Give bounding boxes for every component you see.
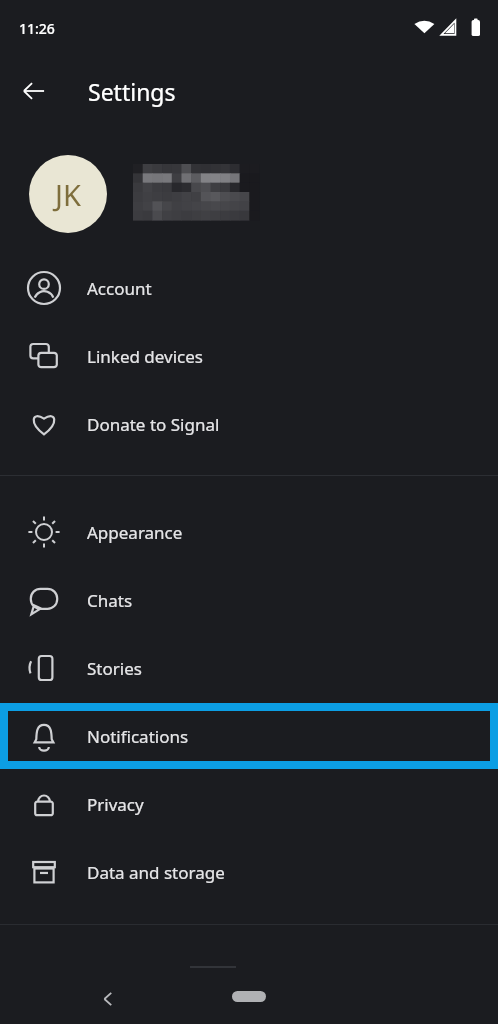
staticText: Settings [88,76,176,107]
staticText: Chats [87,589,133,612]
staticText: Notifications [87,725,189,748]
button[interactable]: Notifications [0,702,498,770]
button[interactable]: Back [88,979,128,1019]
staticText: Stories [87,657,142,680]
button[interactable]: Back [10,67,58,115]
staticText: JK [55,175,81,214]
staticText: 11:26 [19,19,55,38]
button[interactable]: Account [0,254,498,322]
button[interactable]: Appearance [0,498,498,566]
button[interactable]: JK [0,140,498,248]
staticText: Appearance [87,521,183,544]
staticText: Data and storage [87,861,225,884]
button[interactable]: Privacy [0,770,498,838]
staticText: Privacy [87,793,144,816]
button[interactable]: Stories [0,634,498,702]
staticText: Donate to Signal [87,413,220,436]
button[interactable]: Home [232,991,266,1002]
button[interactable]: Donate to Signal [0,390,498,458]
button[interactable]: Linked devices [0,322,498,390]
staticText: Account [87,277,152,300]
button[interactable]: Data and storage [0,838,498,906]
staticText: Linked devices [87,345,203,368]
button[interactable]: Chats [0,566,498,634]
